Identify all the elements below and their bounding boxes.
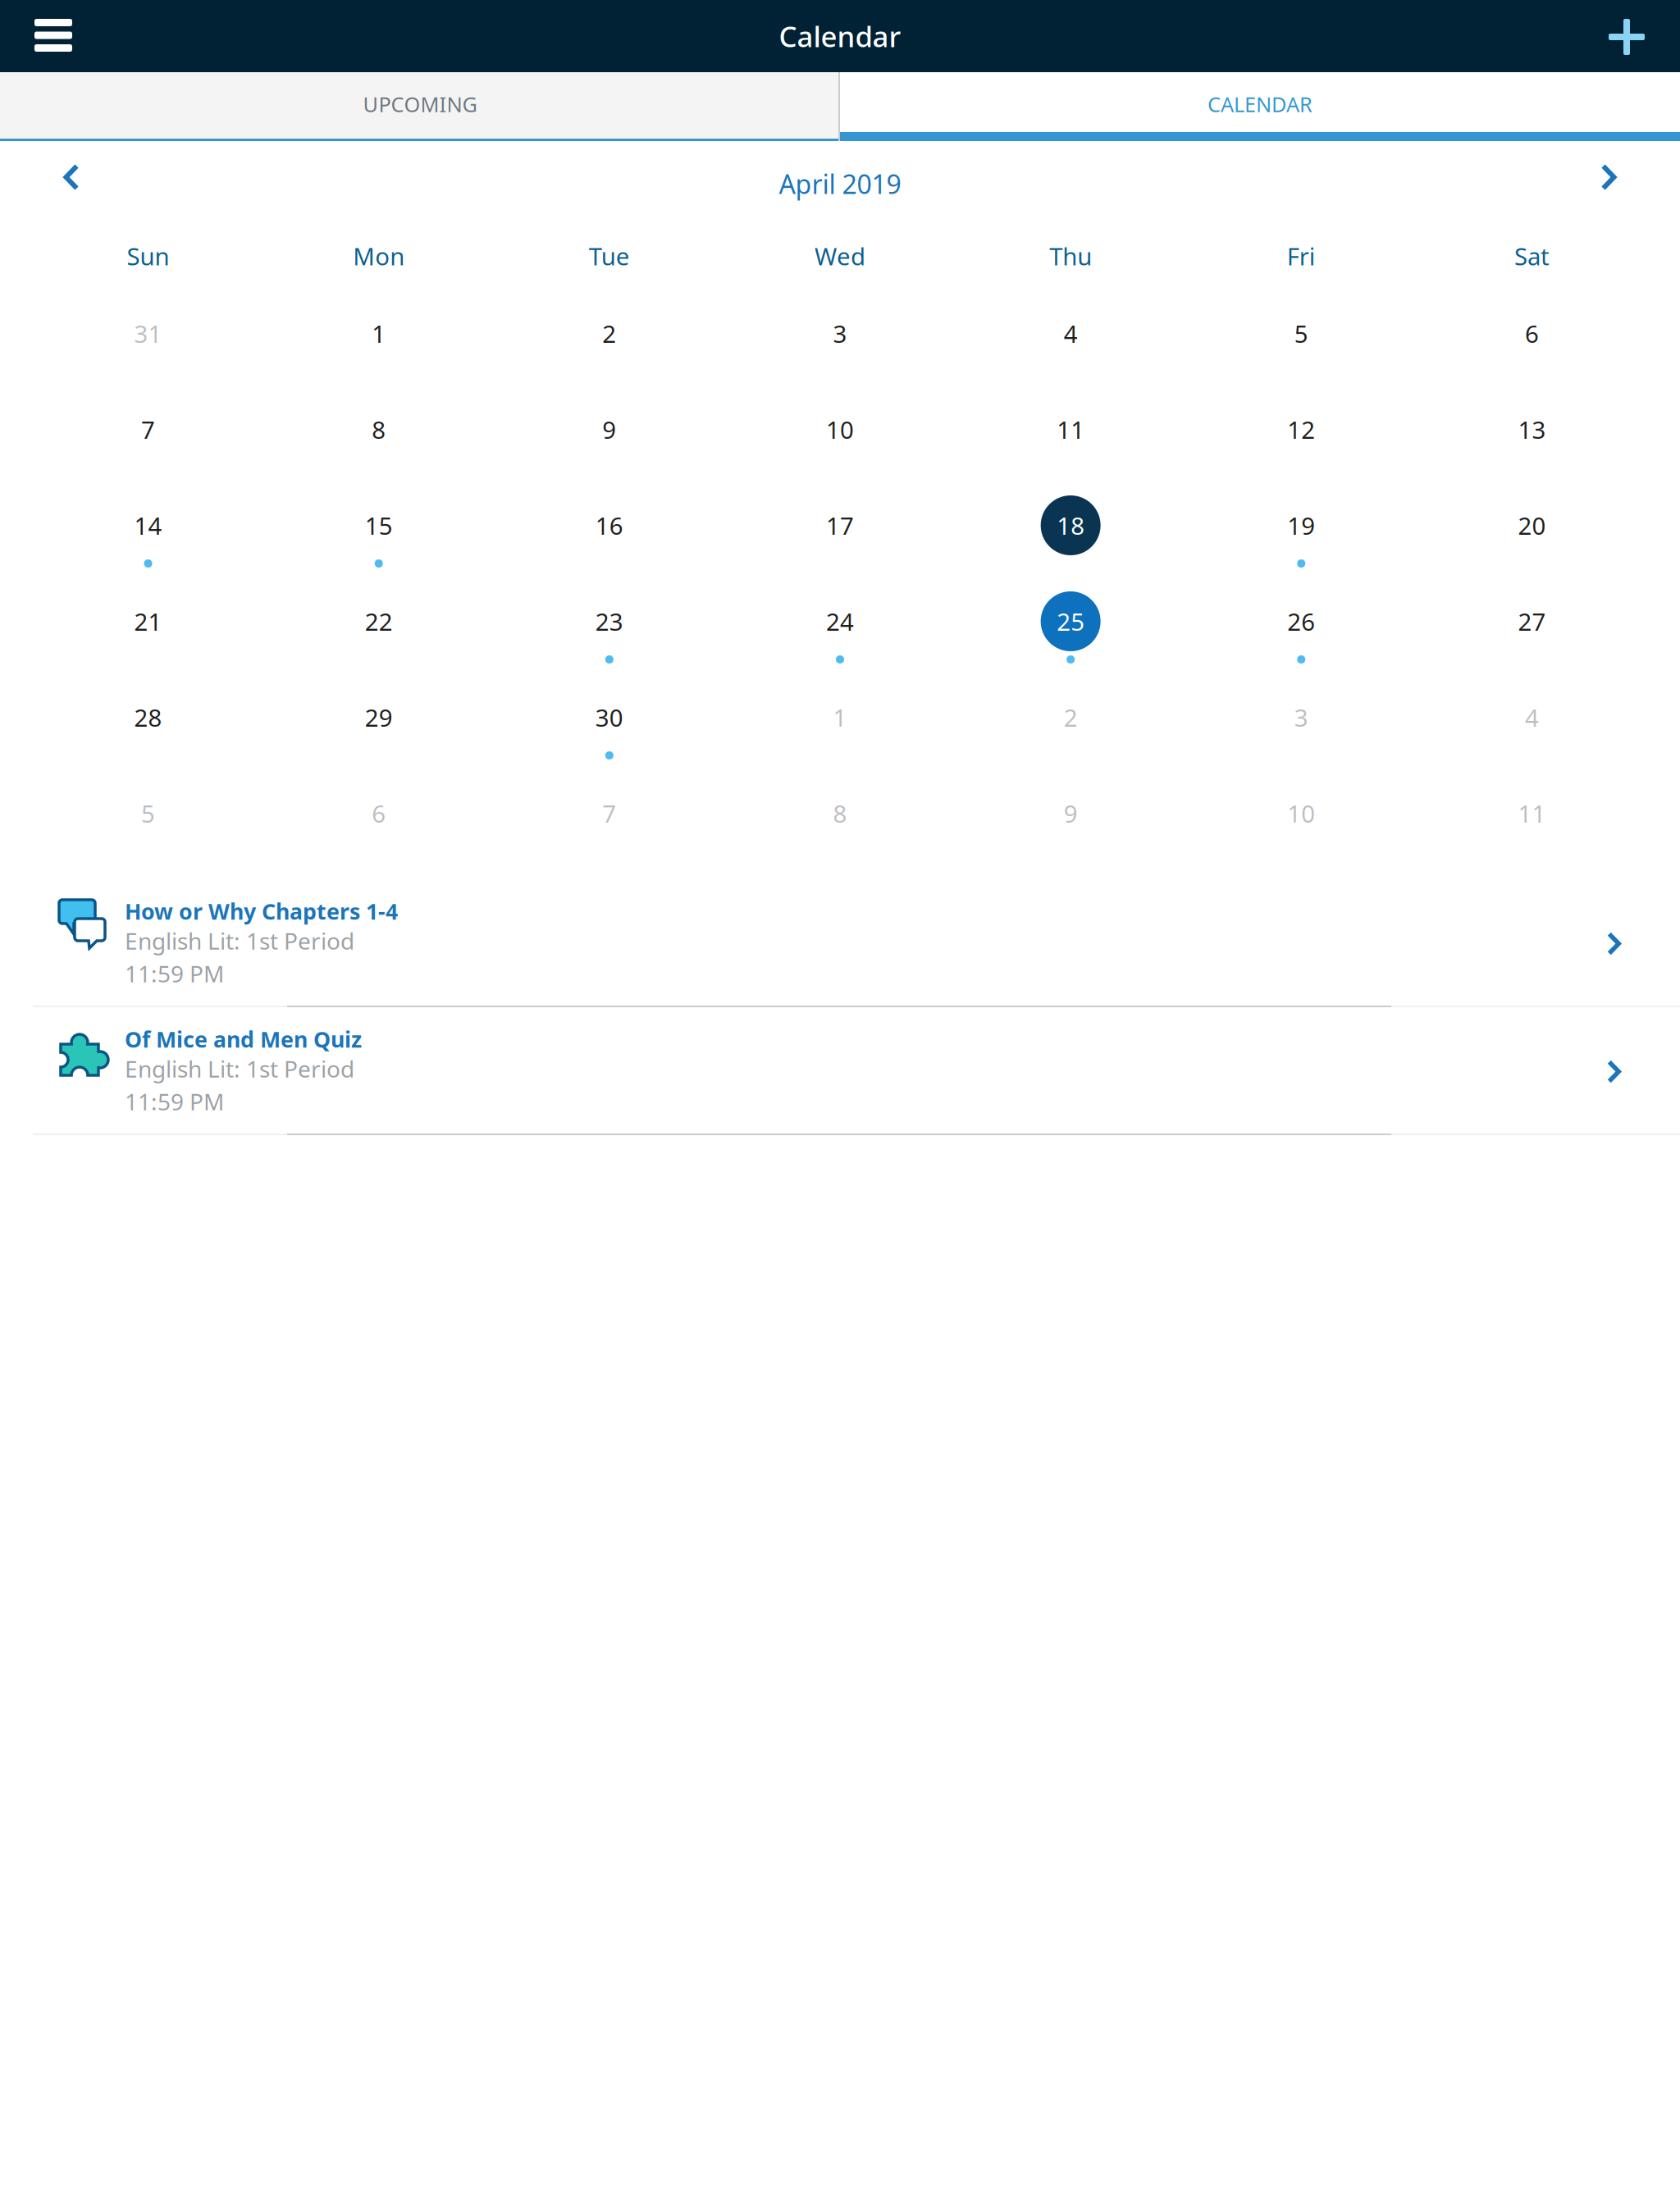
staticText: Calendar xyxy=(779,17,901,55)
staticText: 22 xyxy=(365,605,393,637)
staticText: English Lit: 1st Period xyxy=(125,926,354,956)
staticText: 3 xyxy=(833,317,847,349)
staticText: 3 xyxy=(1294,701,1308,733)
staticText: 4 xyxy=(1064,317,1078,349)
staticText: Wed xyxy=(815,240,865,272)
staticText: 11:59 PM xyxy=(125,1086,224,1117)
staticText: 14 xyxy=(134,509,162,541)
staticText: 10 xyxy=(1287,797,1315,829)
staticText: 24 xyxy=(826,605,854,637)
staticText: 11 xyxy=(1057,413,1085,445)
staticText: 5 xyxy=(1294,317,1308,349)
staticText: 4 xyxy=(1525,701,1539,733)
staticText: 19 xyxy=(1287,509,1315,541)
staticText: 9 xyxy=(1064,797,1078,829)
staticText: 7 xyxy=(141,413,155,445)
staticText: Thu xyxy=(1049,240,1092,272)
staticText: 8 xyxy=(833,797,847,829)
staticText: How or Why Chapters 1-4 xyxy=(125,897,398,926)
staticText: 8 xyxy=(372,413,386,445)
button[interactable]: Previous month xyxy=(0,141,139,221)
button[interactable]: Add event xyxy=(1573,0,1680,72)
staticText: 18 xyxy=(1057,509,1085,541)
staticText: 12 xyxy=(1287,413,1315,445)
staticText: 31 xyxy=(134,317,162,349)
staticText: 2 xyxy=(602,317,616,349)
staticText: English Lit: 1st Period xyxy=(125,1053,354,1084)
staticText: 2 xyxy=(1064,701,1078,733)
button[interactable]: Of Mice and Men Quiz xyxy=(0,1007,1680,1135)
staticText: Of Mice and Men Quiz xyxy=(125,1025,362,1054)
staticText: 5 xyxy=(141,797,155,829)
staticText: 21 xyxy=(134,605,162,637)
button[interactable]: Next month xyxy=(1541,141,1680,221)
staticText: April 2019 xyxy=(779,166,901,201)
staticText: CALENDAR xyxy=(1207,90,1312,118)
staticText: 23 xyxy=(595,605,623,637)
staticText: 9 xyxy=(602,413,616,445)
staticText: 13 xyxy=(1518,413,1546,445)
staticText: UPCOMING xyxy=(363,90,477,118)
staticText: 15 xyxy=(365,509,393,541)
staticText: Tue xyxy=(589,240,630,272)
staticText: 10 xyxy=(826,413,854,445)
staticText: 11:59 PM xyxy=(125,958,224,989)
staticText: 6 xyxy=(372,797,386,829)
staticText: Fri xyxy=(1287,240,1316,272)
staticText: 6 xyxy=(1525,317,1539,349)
staticText: 1 xyxy=(372,317,386,349)
staticText: 17 xyxy=(826,509,854,541)
staticText: 28 xyxy=(134,701,162,733)
button[interactable]: CALENDAR xyxy=(840,72,1680,141)
staticText: 30 xyxy=(595,701,623,733)
staticText: 1 xyxy=(833,701,847,733)
button[interactable]: UPCOMING xyxy=(0,72,840,141)
staticText: Sat xyxy=(1514,240,1549,272)
staticText: 11 xyxy=(1518,797,1546,829)
staticText: 7 xyxy=(602,797,616,829)
button[interactable]: How or Why Chapters 1-4 xyxy=(0,879,1680,1007)
staticText: Mon xyxy=(353,240,405,272)
staticText: 16 xyxy=(595,509,623,541)
staticText: 25 xyxy=(1057,605,1085,637)
staticText: Sun xyxy=(127,240,169,272)
staticText: 27 xyxy=(1518,605,1546,637)
staticText: 26 xyxy=(1287,605,1315,637)
staticText: 20 xyxy=(1518,509,1546,541)
staticText: 29 xyxy=(365,701,393,733)
button[interactable]: Menu xyxy=(0,0,107,72)
